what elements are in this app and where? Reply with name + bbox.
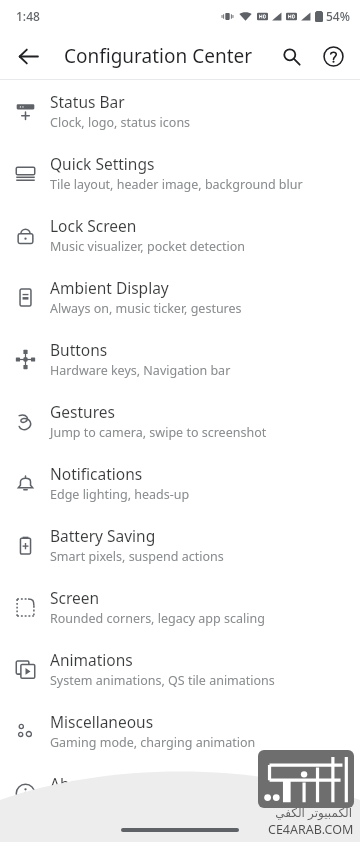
button[interactable]: Screen	[0, 576, 360, 638]
staticText: Notifications	[50, 463, 143, 484]
staticText: 1:48	[16, 8, 40, 24]
staticText: Screen	[50, 587, 100, 608]
staticText: Music visualizer, pocket detection	[50, 238, 246, 255]
staticText: Gestures	[50, 401, 115, 422]
staticText: Gaming mode, charging animation	[50, 734, 256, 751]
button[interactable]: Search	[270, 35, 312, 77]
staticText: Buttons	[50, 339, 108, 360]
staticText: Clock, logo, status icons	[50, 114, 191, 131]
staticText: System animations, QS tile animations	[50, 672, 275, 689]
button[interactable]: Gestures	[0, 390, 360, 452]
button[interactable]: Buttons	[0, 328, 360, 390]
button[interactable]: About	[0, 762, 360, 824]
staticText: About	[50, 773, 94, 794]
button[interactable]: Miscellaneous	[0, 700, 360, 762]
staticText: Rounded corners, legacy app scaling	[50, 610, 265, 627]
staticText: Hardware keys, Navigation bar	[50, 362, 231, 379]
button[interactable]: Quick Settings	[0, 142, 360, 204]
button[interactable]: Ambient Display	[0, 266, 360, 328]
staticText: Battery Saving	[50, 525, 156, 546]
button[interactable]: Animations	[0, 638, 360, 700]
staticText: Configuration Center	[64, 43, 253, 69]
staticText: Miscellaneous	[50, 711, 154, 732]
button[interactable]: Help	[312, 35, 354, 77]
staticText: Status Bar	[50, 91, 125, 112]
staticText: الكمبيوتر الكفي	[275, 804, 352, 820]
button[interactable]: Back	[6, 34, 50, 78]
button[interactable]: Notifications	[0, 452, 360, 514]
staticText: Tile layout, header image, background bl…	[50, 176, 303, 193]
staticText: Edge lighting, heads-up	[50, 486, 190, 503]
button[interactable]: Status Bar	[0, 80, 360, 142]
staticText: Always on, music ticker, gestures	[50, 300, 242, 317]
staticText: 54%	[326, 8, 350, 24]
button[interactable]: Battery Saving	[0, 514, 360, 576]
staticText: Quick Settings	[50, 153, 155, 174]
staticText: Animations	[50, 649, 133, 670]
button[interactable]: Lock Screen	[0, 204, 360, 266]
staticText: Smart pixels, suspend actions	[50, 548, 224, 565]
staticText: Ambient Display	[50, 277, 169, 298]
staticText: CE4ARAB.COM	[268, 821, 354, 838]
staticText: Jump to camera, swipe to screenshot	[50, 424, 267, 441]
staticText: Lock Screen	[50, 215, 137, 236]
